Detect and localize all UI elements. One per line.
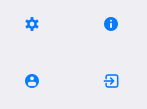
button[interactable]: Account — [0, 57, 64, 105]
button[interactable]: About — [75, 0, 147, 48]
button[interactable]: Sign Out — [75, 57, 147, 105]
button[interactable]: Settings — [0, 0, 64, 48]
